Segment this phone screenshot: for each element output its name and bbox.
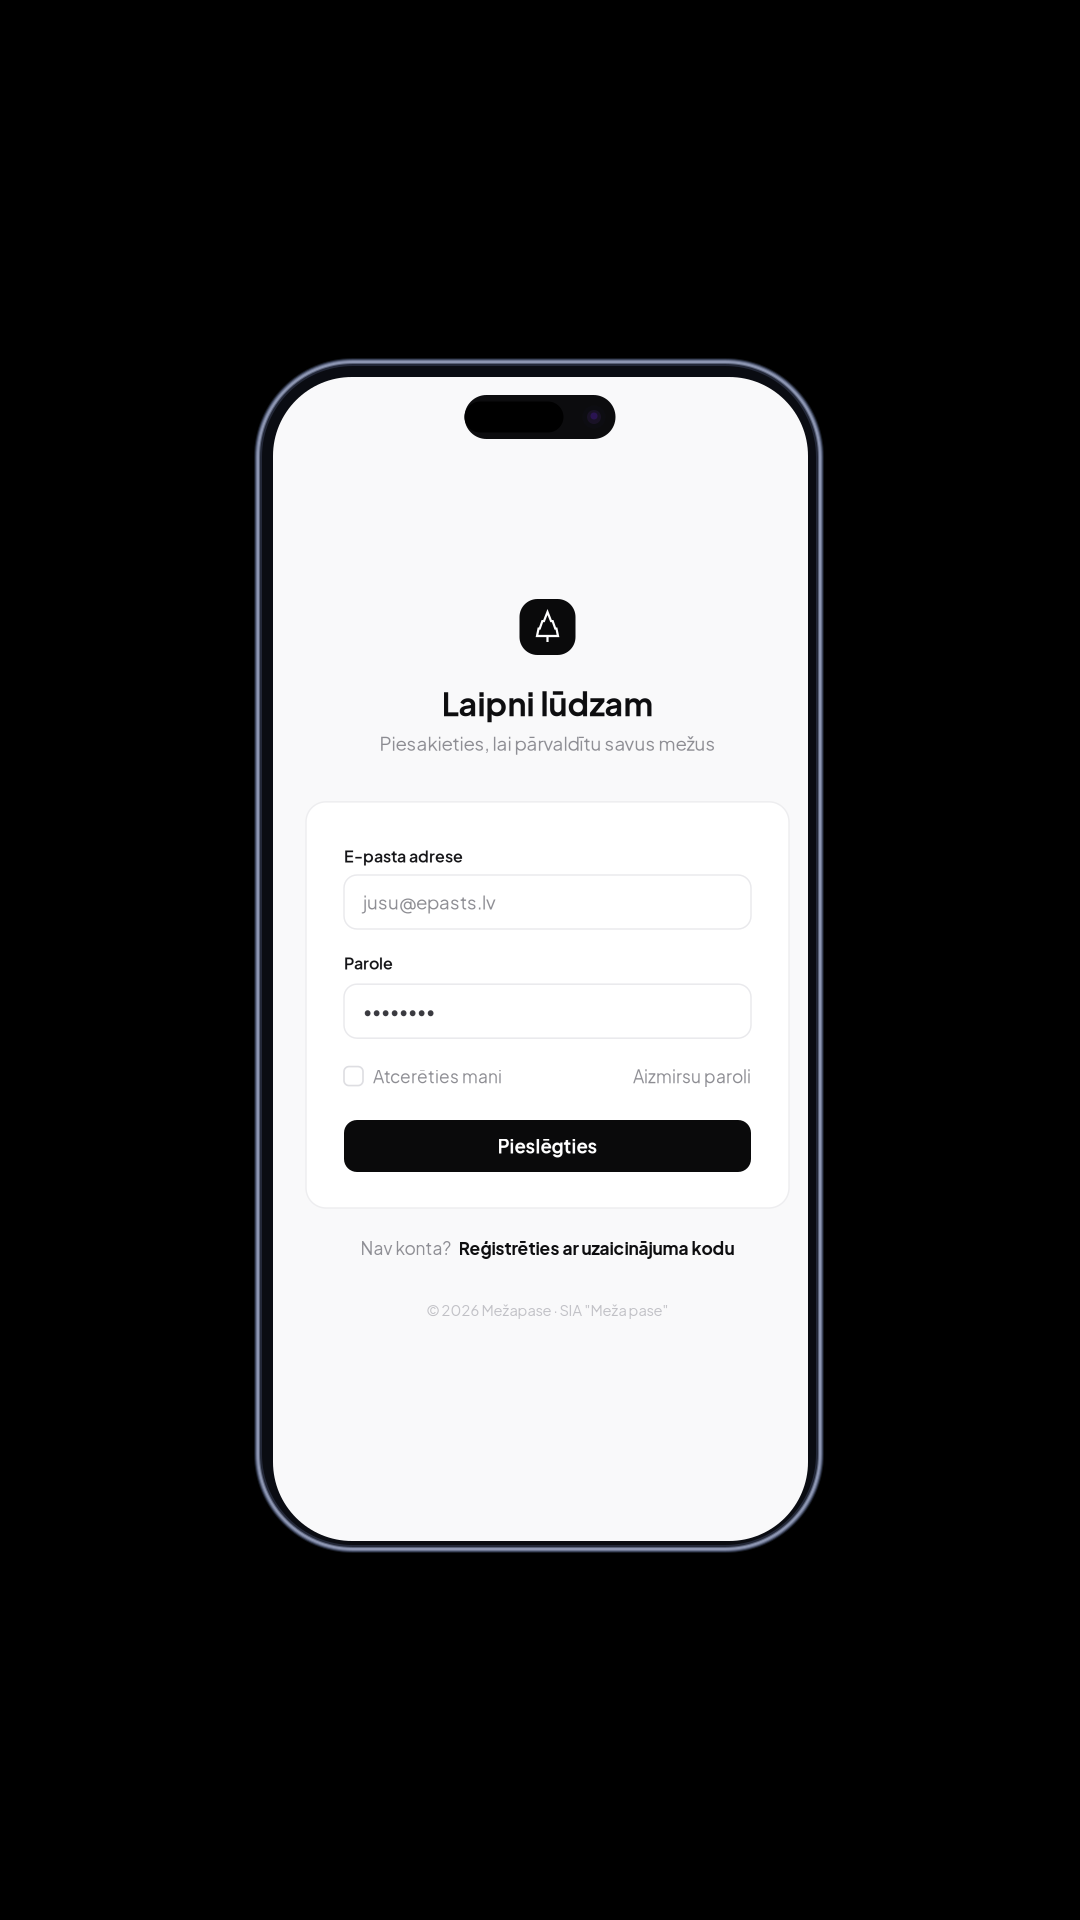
staticText: E-pasta adrese (344, 846, 463, 866)
button[interactable]: Pieslēgties (344, 1120, 751, 1172)
staticText: Nav konta? (360, 1237, 451, 1259)
staticText: Atcerēties mani (373, 1065, 502, 1087)
staticText: Piesakieties, lai pārvaldītu savus mežus (379, 731, 715, 755)
staticText: Reģistrēties ar uzaicinājuma kodu (458, 1237, 734, 1259)
staticText: jusu@epasts.lv (363, 890, 496, 914)
staticText: Parole (344, 953, 393, 973)
staticText: © 2026 Mežapase · SIA "Meža pase" (426, 1301, 668, 1319)
staticText: Aizmirsu paroli (633, 1065, 751, 1087)
button[interactable]: Nav konta? (360, 1237, 734, 1259)
button[interactable]: Atcerēties mani (344, 1065, 502, 1087)
staticText: •••••••• (363, 1000, 435, 1022)
staticText: Pieslēgties (497, 1134, 597, 1158)
staticText: Laipni lūdzam (441, 683, 653, 723)
button[interactable]: Aizmirsu paroli (633, 1065, 751, 1087)
